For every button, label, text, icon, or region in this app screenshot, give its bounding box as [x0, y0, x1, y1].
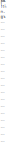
button[interactable]: Gene — [0, 33, 7, 40]
button[interactable]: Gene — [0, 68, 7, 75]
staticText: Gene — [1, 113, 5, 114]
button[interactable]: Gene — [0, 40, 7, 47]
staticText: Gene — [1, 106, 5, 107]
staticText: 9:41 — [0, 0, 5, 6]
staticText: Gene — [1, 71, 5, 72]
button[interactable]: Gene — [0, 89, 7, 96]
button[interactable]: Gene — [0, 61, 7, 68]
button[interactable]: Gene — [0, 12, 7, 19]
button[interactable]: Gene — [0, 47, 7, 54]
staticText: Gene — [1, 120, 5, 121]
staticText: Gene — [1, 64, 5, 65]
staticText: Gene — [1, 92, 5, 93]
button[interactable]: Gene — [0, 54, 7, 61]
staticText: Gene — [1, 50, 5, 51]
staticText: Gene — [1, 57, 5, 58]
staticText: Gene — [1, 134, 5, 135]
button[interactable]: Gene — [0, 117, 7, 124]
staticText: Gene — [1, 22, 5, 23]
staticText: Gene — [1, 127, 5, 128]
staticText: Gene — [1, 85, 5, 86]
button[interactable]: Gene — [0, 19, 7, 26]
staticText: Gene — [1, 15, 5, 16]
button[interactable]: Gene — [0, 103, 7, 110]
staticText: Settings — [0, 0, 6, 19]
staticText: Gene — [1, 78, 5, 79]
button[interactable]: Gene — [0, 110, 7, 117]
button[interactable]: Gene — [0, 124, 7, 131]
button[interactable]: Gene — [0, 75, 7, 82]
button[interactable]: Gene — [0, 82, 7, 89]
staticText: Gene — [1, 29, 5, 30]
staticText: Gene — [1, 36, 5, 37]
staticText: Gene — [1, 141, 5, 142]
button[interactable]: Gene — [0, 138, 7, 145]
button[interactable]: Gene — [0, 96, 7, 103]
button[interactable]: Gene — [0, 131, 7, 138]
staticText: Gene — [1, 99, 5, 100]
staticText: Gene — [1, 43, 5, 44]
button[interactable]: Gene — [0, 26, 7, 33]
